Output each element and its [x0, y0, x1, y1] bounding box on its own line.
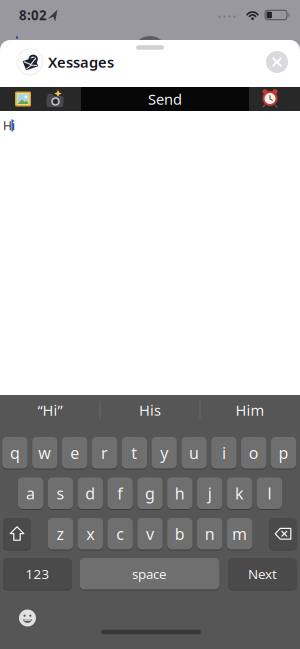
button[interactable]: o	[241, 437, 266, 468]
staticText: c	[116, 523, 124, 544]
staticText: x	[86, 523, 94, 544]
staticText: s	[56, 483, 64, 504]
staticText: a	[26, 483, 35, 504]
button[interactable]	[269, 518, 297, 549]
staticText: f	[117, 483, 123, 504]
staticText: b	[175, 523, 185, 544]
button[interactable]	[19, 609, 36, 626]
button[interactable]: His	[100, 395, 199, 425]
staticText: i	[222, 442, 226, 463]
staticText: 123	[25, 565, 49, 583]
button[interactable]: c	[107, 518, 133, 549]
button[interactable]: a	[18, 477, 43, 509]
staticText: Hi	[3, 117, 15, 133]
staticText: e	[70, 442, 79, 463]
button[interactable]: l	[257, 477, 282, 509]
button[interactable]: n	[197, 518, 222, 549]
staticText: His	[139, 400, 161, 420]
staticText: y	[160, 442, 168, 463]
staticText: z	[56, 523, 64, 544]
staticText: Xessages	[48, 52, 114, 72]
button[interactable]: e	[62, 437, 87, 468]
staticText: Send	[148, 89, 182, 109]
staticText: r	[101, 442, 108, 463]
button[interactable]: 123	[3, 558, 72, 589]
staticText: w	[38, 442, 51, 463]
staticText: h	[175, 483, 185, 504]
button[interactable]	[249, 87, 300, 111]
staticText: Him	[235, 400, 264, 420]
button[interactable]: d	[78, 477, 103, 509]
staticText: 8:02	[19, 6, 47, 24]
button[interactable]: w	[32, 437, 57, 468]
button[interactable]: h	[167, 477, 192, 509]
button[interactable]: q	[2, 437, 28, 468]
button[interactable]: y	[151, 437, 177, 468]
button[interactable]	[3, 518, 31, 549]
button[interactable]: s	[48, 477, 73, 509]
staticText: space	[132, 565, 167, 583]
button[interactable]: x	[78, 518, 103, 549]
button[interactable]: g	[137, 477, 163, 509]
staticText: n	[205, 523, 215, 544]
button[interactable]: i	[211, 437, 236, 468]
button[interactable]	[266, 51, 288, 73]
staticText: t	[131, 442, 137, 463]
staticText: Next	[248, 565, 277, 583]
button[interactable]: “Hi”	[0, 395, 99, 425]
button[interactable]: b	[167, 518, 192, 549]
button[interactable]: Next	[228, 558, 297, 589]
staticText: o	[249, 442, 259, 463]
staticText: “Hi”	[37, 400, 62, 420]
staticText: k	[235, 483, 244, 504]
button[interactable]: z	[48, 518, 73, 549]
button[interactable]: v	[137, 518, 163, 549]
button[interactable]: p	[271, 437, 296, 468]
staticText: p	[279, 442, 289, 463]
button[interactable]: Send	[81, 87, 249, 111]
staticText: m	[232, 523, 247, 544]
button[interactable]: m	[227, 518, 252, 549]
button[interactable]	[11, 87, 35, 111]
staticText: u	[189, 442, 199, 463]
staticText: j	[208, 483, 212, 504]
button[interactable]: Him	[200, 395, 299, 425]
button[interactable]: k	[227, 477, 252, 509]
button[interactable]: u	[181, 437, 207, 468]
button[interactable]: f	[107, 477, 133, 509]
button[interactable]: j	[197, 477, 222, 509]
button[interactable]: r	[92, 437, 117, 468]
staticText: q	[10, 442, 20, 463]
button[interactable]	[43, 87, 67, 111]
button[interactable]: t	[122, 437, 147, 468]
button[interactable]: space	[80, 558, 219, 589]
staticText: d	[85, 483, 95, 504]
staticText: v	[146, 523, 154, 544]
staticText: g	[145, 483, 155, 504]
staticText: l	[267, 483, 271, 504]
